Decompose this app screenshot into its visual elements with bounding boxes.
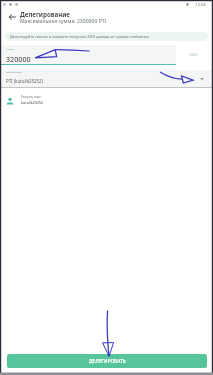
staticText: ДЕЛЕГИРОВАТЬ <box>89 358 126 365</box>
staticText: PTI (kutulik25252) <box>6 78 43 84</box>
button[interactable] <box>0 91 213 108</box>
staticText: Сумма <box>6 47 14 50</box>
staticText: Владелец ноды <box>21 95 41 99</box>
button[interactable] <box>0 70 213 88</box>
staticText: Способ оплаты <box>6 71 23 74</box>
staticText: Делегируйте голоса и сможете получать 50… <box>10 34 150 39</box>
button[interactable]: Back <box>4 9 19 24</box>
staticText: Делегирование <box>20 10 70 18</box>
staticText: Максимальная сумма: 2300000 PTI <box>20 18 107 25</box>
staticText: 12:04 <box>195 2 206 8</box>
button[interactable]: ДЕЛЕГИРОВАТЬ <box>7 354 207 368</box>
staticText: 320000 <box>6 54 31 64</box>
staticText: MAX <box>189 52 198 58</box>
button[interactable]: MAX <box>176 45 210 64</box>
staticText: kutulik25252 <box>21 100 44 105</box>
